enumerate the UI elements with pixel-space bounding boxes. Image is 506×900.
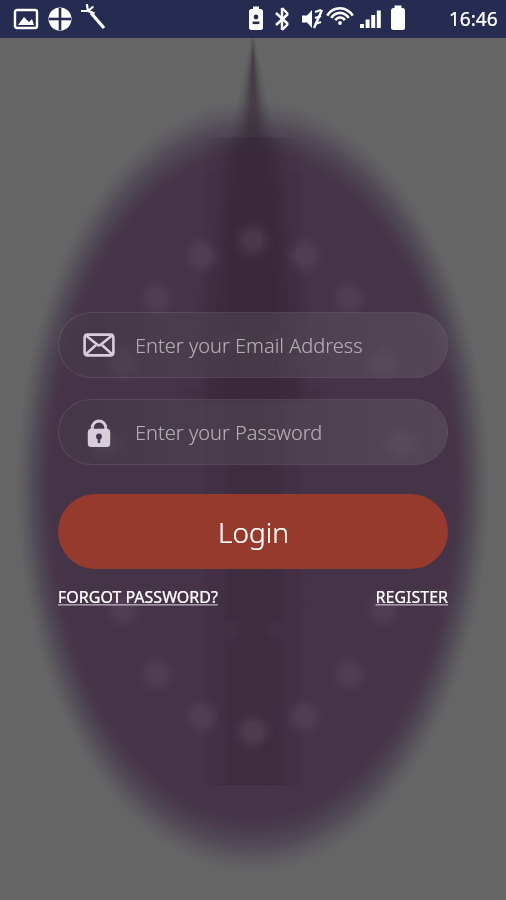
staticText: Enter your Password	[135, 419, 323, 446]
staticText: 16:46	[449, 6, 498, 32]
staticText: Login	[218, 513, 289, 551]
button[interactable]: Enter your Password	[59, 400, 447, 464]
button[interactable]: Enter your Email Address	[59, 313, 447, 377]
staticText: FORGOT PASSWORD?	[58, 586, 218, 608]
button[interactable]: Login	[58, 494, 448, 569]
staticText: REGISTER	[375, 586, 448, 608]
button[interactable]: REGISTER	[375, 582, 448, 612]
button[interactable]: FORGOT PASSWORD?	[58, 582, 218, 612]
staticText: Enter your Email Address	[135, 332, 363, 359]
